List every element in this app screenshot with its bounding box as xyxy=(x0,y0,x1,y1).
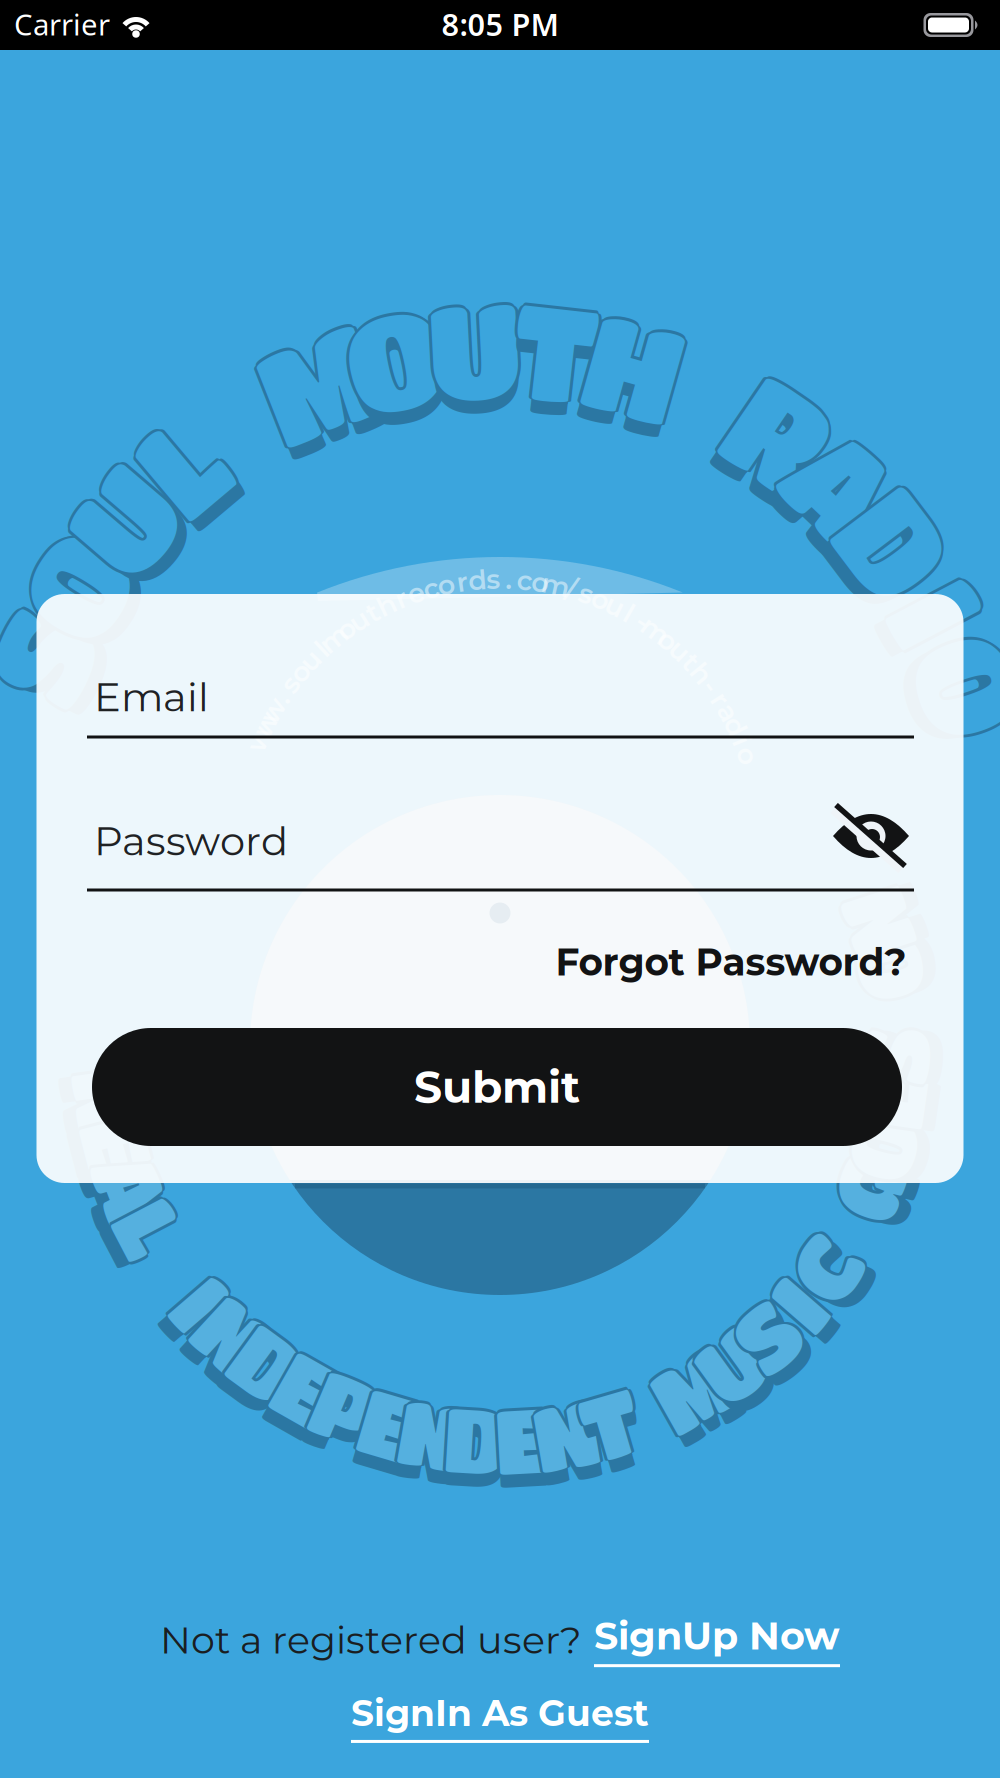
staticText: D xyxy=(444,1384,509,1486)
staticText: D xyxy=(848,482,944,632)
staticText xyxy=(167,1215,187,1318)
staticText: I xyxy=(915,537,962,686)
staticText: E xyxy=(95,1093,149,1195)
staticText: I xyxy=(778,1252,810,1355)
staticText xyxy=(164,1215,184,1318)
staticText: o xyxy=(592,583,610,616)
button[interactable]: Show password xyxy=(831,804,911,868)
staticText: U xyxy=(430,273,525,422)
staticText: T xyxy=(513,288,598,438)
staticText: G xyxy=(837,1134,897,1237)
staticText: I xyxy=(185,1264,217,1366)
staticText: O xyxy=(849,916,917,1018)
staticText xyxy=(883,960,903,1063)
staticText: Email xyxy=(94,673,209,721)
staticText: R xyxy=(78,1049,142,1151)
staticText: G xyxy=(834,1137,894,1240)
staticText: I xyxy=(182,1251,214,1353)
staticText: m xyxy=(541,568,570,602)
staticText: o xyxy=(739,739,757,772)
staticText xyxy=(695,332,724,481)
button[interactable]: SignUp Now xyxy=(594,1613,840,1667)
staticText: A xyxy=(794,412,890,562)
staticText: S xyxy=(0,595,83,745)
staticText xyxy=(231,342,260,492)
staticText: S xyxy=(862,1005,920,1108)
staticText: s xyxy=(283,667,297,701)
staticText: o xyxy=(337,612,355,645)
staticText xyxy=(695,319,724,468)
staticText: R xyxy=(732,358,826,508)
staticText xyxy=(646,1357,666,1459)
staticText: A xyxy=(797,409,893,559)
staticText: U xyxy=(76,448,171,598)
staticText: E xyxy=(281,1336,335,1439)
staticText: E xyxy=(495,1384,549,1487)
staticText: T xyxy=(516,275,601,425)
staticText: S xyxy=(0,582,83,732)
staticText xyxy=(640,1357,660,1459)
button[interactable]: Forgot Password? xyxy=(555,939,906,985)
staticText: M xyxy=(654,1350,733,1453)
staticText: P xyxy=(311,1356,374,1459)
staticText: L xyxy=(126,1180,175,1282)
staticText: G xyxy=(837,1150,897,1253)
staticText xyxy=(164,1218,184,1321)
staticText: D xyxy=(848,469,944,619)
staticText: E xyxy=(361,1375,415,1477)
staticText: I xyxy=(915,540,962,689)
staticText: U xyxy=(698,1316,763,1418)
staticText: D xyxy=(848,472,944,622)
staticText: G xyxy=(840,1137,900,1240)
staticText: A xyxy=(99,1139,165,1241)
staticText: N xyxy=(200,1296,266,1399)
staticText: E xyxy=(364,1372,418,1474)
staticText: D xyxy=(444,1390,509,1492)
staticText: Password xyxy=(94,817,288,865)
staticText: C xyxy=(795,1220,854,1322)
staticText: U xyxy=(76,445,171,595)
staticText: O xyxy=(921,624,1000,773)
staticText: O xyxy=(847,1107,915,1210)
button[interactable]: SignIn As Guest xyxy=(351,1691,649,1743)
staticText: L xyxy=(126,1190,175,1292)
staticText: O xyxy=(27,513,126,663)
staticText: u xyxy=(606,589,625,622)
staticText xyxy=(164,1228,184,1331)
staticText: T xyxy=(513,275,598,425)
button[interactable]: Submit xyxy=(92,1028,902,1146)
staticText: . xyxy=(278,680,285,714)
staticText: l xyxy=(625,596,633,630)
staticText: A xyxy=(794,409,890,559)
staticText: P xyxy=(314,1359,377,1462)
staticText: l xyxy=(318,632,326,666)
staticText: A xyxy=(102,1136,168,1238)
staticText: D xyxy=(235,1309,300,1411)
staticText: L xyxy=(145,392,216,541)
staticText: G xyxy=(837,1137,897,1240)
staticText: N xyxy=(533,1395,599,1497)
staticText: E xyxy=(278,1339,332,1442)
staticText xyxy=(835,1178,855,1280)
staticText: U xyxy=(698,1310,763,1412)
staticText: S xyxy=(0,579,83,729)
staticText: O xyxy=(852,919,920,1021)
staticText: D xyxy=(848,466,944,616)
staticText: O xyxy=(346,280,445,430)
staticText: U xyxy=(698,1326,763,1428)
staticText: D xyxy=(845,469,941,619)
staticText: U xyxy=(73,445,168,595)
staticText: M xyxy=(261,310,376,459)
staticText xyxy=(164,1212,184,1315)
staticText: Not a registered user? xyxy=(160,1617,582,1663)
staticText: O xyxy=(921,614,1000,763)
staticText: E xyxy=(495,1387,549,1490)
staticText: N xyxy=(530,1382,596,1484)
staticText: O xyxy=(27,507,126,657)
staticText xyxy=(883,957,903,1060)
staticText: w xyxy=(246,722,271,755)
staticText: E xyxy=(361,1369,415,1471)
staticText: D xyxy=(851,469,947,619)
staticText: M xyxy=(261,307,376,456)
staticText: r xyxy=(456,565,467,598)
